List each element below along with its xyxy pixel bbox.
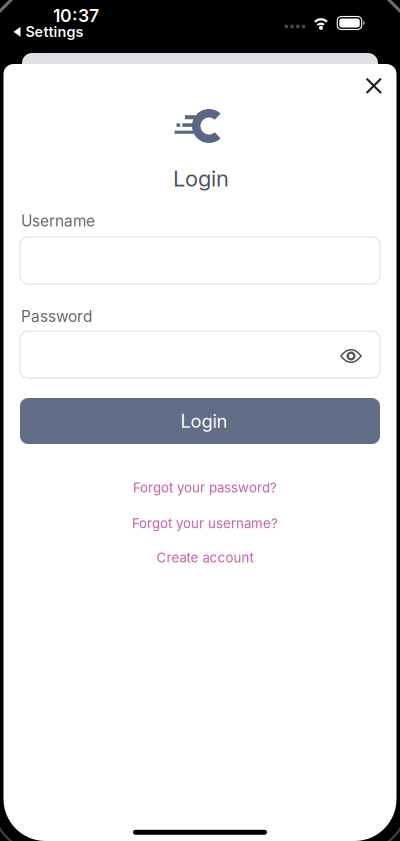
textField[interactable] — [35, 339, 365, 369]
button[interactable]: Close — [366, 78, 382, 94]
staticText: 10:37 — [53, 5, 99, 26]
staticText: Login — [173, 165, 229, 192]
button[interactable]: Back to Settings — [13, 23, 83, 40]
staticText: Username — [21, 211, 95, 230]
staticText: Login — [180, 410, 227, 432]
staticText: Forgot your username? — [132, 515, 278, 531]
staticText: Password — [21, 307, 92, 326]
button[interactable]: Forgot your password? — [133, 480, 277, 496]
button[interactable]: Create account — [156, 550, 253, 566]
staticText: Forgot your password? — [133, 480, 277, 496]
button[interactable]: Show password — [340, 350, 362, 362]
staticText: Create account — [156, 550, 253, 566]
button[interactable]: Login — [20, 398, 380, 444]
button[interactable]: Forgot your username? — [132, 515, 278, 531]
staticText: Settings — [25, 23, 83, 40]
